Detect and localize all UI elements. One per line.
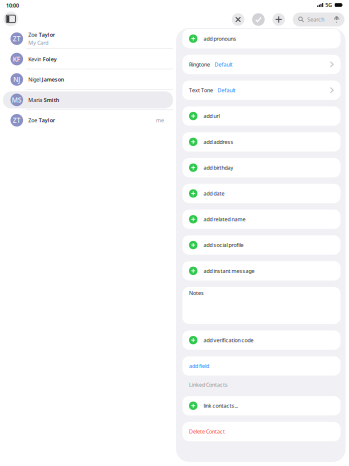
- button[interactable]: Delete Contact: [182, 422, 340, 441]
- staticText: Nigel: [28, 76, 40, 83]
- button[interactable]: add pronouns: [182, 29, 340, 48]
- button[interactable]: add instant message: [182, 261, 340, 280]
- staticText: add address: [203, 138, 233, 145]
- button[interactable]: add address: [182, 132, 340, 151]
- staticText: ZT: [13, 34, 21, 43]
- staticText: Default: [217, 87, 235, 94]
- staticText: Search: [307, 16, 324, 23]
- button[interactable]: Toggle Sidebar: [3, 11, 18, 26]
- staticText: add birthday: [203, 164, 233, 171]
- staticText: add field: [189, 362, 209, 369]
- staticText: Text Tone: [189, 87, 213, 94]
- staticText: My Card: [28, 39, 48, 46]
- staticText: NJ: [13, 75, 20, 84]
- button[interactable]: Done: [252, 13, 265, 26]
- staticText: Zoe: [28, 31, 37, 38]
- button[interactable]: Add: [272, 13, 285, 26]
- staticText: me: [156, 117, 164, 124]
- staticText: 10:00: [6, 2, 19, 9]
- staticText: add instant message: [203, 267, 254, 274]
- staticText: Default: [214, 61, 232, 68]
- staticText: add social profile: [203, 241, 243, 249]
- staticText: add pronouns: [203, 35, 236, 42]
- staticText: Ringtone: [189, 61, 210, 68]
- button[interactable]: Cancel: [232, 13, 244, 26]
- staticText: add related name: [203, 216, 245, 223]
- staticText: Smith: [44, 96, 59, 103]
- staticText: Linked Contacts: [189, 381, 228, 388]
- staticText: Maria: [28, 96, 42, 103]
- button[interactable]: link contacts...: [182, 396, 340, 415]
- staticText: Notes: [189, 289, 204, 297]
- staticText: Taylor: [39, 117, 55, 124]
- staticText: Kevin: [28, 55, 41, 63]
- button[interactable]: add field: [182, 356, 340, 376]
- button[interactable]: MS: [3, 90, 173, 110]
- staticText: KF: [13, 55, 21, 64]
- button[interactable]: add url: [182, 106, 340, 126]
- button[interactable]: KF: [3, 49, 173, 69]
- button[interactable]: add social profile: [182, 235, 340, 255]
- button[interactable]: add birthday: [182, 158, 340, 177]
- button[interactable]: ZT: [3, 28, 173, 49]
- button[interactable]: Notes: [182, 287, 340, 324]
- staticText: ZT: [13, 116, 21, 125]
- staticText: add date: [203, 190, 224, 197]
- staticText: 5G: [325, 1, 332, 9]
- staticText: add url: [203, 112, 219, 120]
- button[interactable]: Text Tone: [182, 81, 340, 100]
- button[interactable]: add related name: [182, 210, 340, 229]
- staticText: Taylor: [39, 31, 55, 38]
- button[interactable]: NJ: [3, 69, 173, 90]
- staticText: MS: [12, 95, 22, 104]
- button[interactable]: add date: [182, 184, 340, 203]
- staticText: Delete Contact: [189, 428, 225, 435]
- button[interactable]: Ringtone: [182, 55, 340, 74]
- staticText: Jameson: [42, 76, 64, 83]
- button[interactable]: add verification code: [182, 330, 340, 350]
- staticText: add verification code: [203, 337, 253, 344]
- button[interactable]: Search: [293, 13, 344, 26]
- button[interactable]: ZT: [3, 110, 173, 130]
- staticText: Foley: [43, 55, 57, 63]
- staticText: Zoe: [28, 117, 37, 124]
- staticText: link contacts...: [203, 402, 237, 409]
